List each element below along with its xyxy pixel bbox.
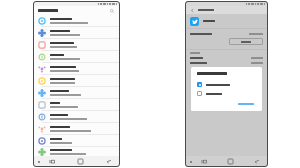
button[interactable]: Back bbox=[189, 7, 195, 13]
button[interactable] bbox=[236, 102, 256, 106]
button[interactable] bbox=[33, 135, 120, 146]
button[interactable] bbox=[33, 27, 120, 38]
button[interactable] bbox=[33, 15, 120, 26]
button[interactable] bbox=[33, 123, 120, 134]
button[interactable] bbox=[33, 75, 120, 86]
button[interactable] bbox=[33, 147, 120, 156]
button[interactable] bbox=[197, 89, 256, 98]
button[interactable] bbox=[33, 87, 120, 98]
button[interactable]: Back bbox=[103, 156, 114, 167]
button[interactable]: Home bbox=[225, 156, 236, 167]
button[interactable]: Recents bbox=[47, 156, 58, 167]
button[interactable] bbox=[33, 63, 120, 74]
button[interactable]: Home bbox=[75, 156, 86, 167]
button[interactable]: Recents bbox=[199, 156, 210, 167]
button[interactable] bbox=[229, 38, 263, 45]
button[interactable] bbox=[197, 80, 256, 89]
button[interactable]: Search bbox=[108, 7, 115, 14]
button[interactable] bbox=[33, 111, 120, 122]
button[interactable]: Back bbox=[251, 156, 262, 167]
button[interactable] bbox=[33, 99, 120, 110]
button[interactable] bbox=[33, 51, 120, 62]
button[interactable] bbox=[33, 39, 120, 50]
